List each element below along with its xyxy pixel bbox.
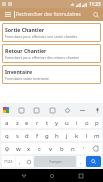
staticText: j (66, 132, 68, 140)
staticText: i (76, 119, 78, 127)
button[interactable]: c (34, 143, 45, 154)
button[interactable]: Shift (1, 143, 13, 154)
staticText: 11:23 (89, 1, 101, 7)
button[interactable]: Sortie Chantier (2, 23, 101, 42)
button[interactable]: s (12, 130, 22, 141)
button[interactable]: g (42, 130, 52, 141)
button[interactable]: Google (2, 106, 10, 114)
button[interactable]: k (72, 130, 82, 141)
staticText: e (25, 119, 29, 127)
button[interactable]: Emoji (24, 156, 33, 167)
staticText: v (49, 145, 53, 153)
staticText: Sortie Chantier (5, 26, 45, 33)
button[interactable]: . (77, 156, 85, 167)
button[interactable]: GIF (32, 106, 40, 114)
staticText: Formulaire pour effectuer une sortie cha… (5, 34, 78, 39)
staticText: o (85, 119, 89, 127)
button[interactable]: p (92, 117, 102, 128)
button[interactable]: t (42, 117, 52, 128)
staticText: h (55, 132, 59, 140)
button[interactable]: Themes (17, 106, 25, 114)
button[interactable]: h (52, 130, 62, 141)
button[interactable]: ?123 (2, 156, 15, 167)
staticText: p (95, 119, 99, 127)
button[interactable]: Search (91, 10, 100, 19)
button[interactable]: More (78, 106, 86, 114)
staticText: r (36, 119, 39, 127)
button[interactable]: Clipboard (48, 106, 56, 114)
staticText: y (55, 119, 59, 127)
button[interactable]: x (23, 143, 34, 154)
button[interactable]: y (52, 117, 62, 128)
button[interactable]: Settings (63, 106, 71, 114)
button[interactable]: n (67, 143, 78, 154)
staticText: z (16, 119, 19, 127)
staticText: Inventaire (5, 68, 33, 75)
button[interactable]: , (16, 156, 24, 167)
button[interactable]: Voice input (93, 106, 101, 114)
staticText: d (25, 132, 29, 140)
button[interactable]: r (32, 117, 42, 128)
staticText: Formulaire saisie inventaire (5, 76, 49, 81)
staticText: ' (83, 145, 85, 153)
staticText: f (36, 132, 39, 140)
button[interactable]: o (82, 117, 92, 128)
staticText: b (60, 145, 64, 153)
button[interactable]: u (62, 117, 72, 128)
button[interactable]: v (45, 143, 56, 154)
button[interactable]: m (92, 130, 102, 141)
button[interactable]: Retour Chantier (2, 44, 101, 63)
button[interactable]: l (82, 130, 92, 141)
button[interactable]: Recents (75, 170, 86, 181)
staticText: Retour Chantier (5, 47, 47, 54)
button[interactable]: i (72, 117, 82, 128)
button[interactable]: e (22, 117, 32, 128)
staticText: s (16, 132, 19, 140)
staticText: Rechercher des formulaires (16, 11, 81, 18)
staticText: n (71, 145, 75, 153)
staticText: u (65, 119, 69, 127)
button[interactable]: Home (46, 170, 57, 181)
staticText: w (16, 145, 21, 153)
button[interactable]: Inventaire (2, 65, 101, 84)
button[interactable]: Menu (3, 10, 12, 19)
button[interactable]: q (1, 130, 12, 141)
staticText: Formulaire pour effectuer des retours ch… (5, 55, 80, 60)
staticText: , (19, 158, 21, 166)
button[interactable]: z (12, 117, 22, 128)
button[interactable]: w (13, 143, 23, 154)
staticText: c (38, 145, 41, 153)
staticText: a (5, 119, 9, 127)
staticText: l (86, 132, 88, 140)
staticText: ?123 (4, 159, 13, 164)
staticText: k (75, 132, 79, 140)
staticText: . (80, 158, 82, 166)
button[interactable]: f (32, 130, 42, 141)
button[interactable]: ' (78, 143, 89, 154)
staticText: t (46, 119, 49, 127)
button[interactable]: Backspace (89, 143, 102, 154)
staticText: Français (49, 160, 62, 164)
staticText: x (27, 145, 31, 153)
button[interactable]: j (62, 130, 72, 141)
button[interactable]: a (1, 117, 12, 128)
staticText: g (45, 132, 49, 140)
staticText: m (94, 132, 100, 140)
button[interactable]: Back (18, 170, 29, 181)
button[interactable]: Search (86, 156, 101, 167)
button[interactable]: Français (34, 156, 76, 167)
button[interactable]: d (22, 130, 32, 141)
staticText: q (5, 132, 9, 140)
button[interactable]: b (56, 143, 67, 154)
